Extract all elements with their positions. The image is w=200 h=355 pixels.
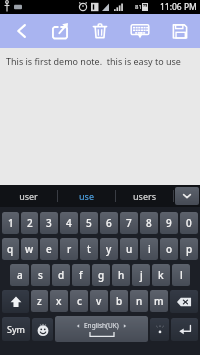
button[interactable]: o [160, 238, 178, 260]
staticText: c [77, 294, 82, 308]
button[interactable]: e [40, 238, 58, 260]
staticText: h [118, 268, 125, 282]
button[interactable]: user [0, 185, 57, 207]
button[interactable]: Space, English (UK) [55, 316, 148, 342]
button[interactable]: a [10, 264, 29, 286]
staticText: 7 [126, 216, 132, 230]
staticText: 11:06 PM [160, 1, 197, 13]
button[interactable]: d [52, 264, 70, 286]
button[interactable]: 2 [21, 212, 38, 234]
button[interactable]: Emoji [32, 318, 53, 341]
staticText: use [79, 190, 94, 202]
staticText: y [106, 242, 112, 256]
button[interactable]: Backspace [170, 290, 198, 313]
button[interactable]: Share [40, 14, 80, 48]
button[interactable]: y [100, 238, 118, 260]
button[interactable]: i [140, 238, 158, 260]
button[interactable]: p [180, 238, 198, 260]
staticText: 1 [8, 216, 14, 230]
button[interactable]: h [112, 264, 130, 286]
staticText: r [67, 242, 72, 256]
staticText: p [186, 242, 193, 256]
button[interactable]: j [132, 264, 150, 286]
staticText: z [37, 294, 42, 308]
button[interactable]: use [58, 185, 115, 207]
button[interactable]: s [31, 264, 50, 286]
staticText: m [154, 294, 164, 308]
staticText: 2 [27, 216, 33, 230]
button[interactable]: k [152, 264, 170, 286]
staticText: g [98, 268, 105, 282]
button[interactable]: c [70, 290, 88, 312]
button[interactable]: v [90, 290, 108, 312]
button[interactable]: z [31, 290, 48, 312]
staticText: i [148, 242, 151, 256]
staticText: 9 [166, 216, 172, 230]
staticText: n [136, 294, 143, 308]
staticText: d [58, 268, 65, 282]
staticText: 6 [106, 216, 112, 230]
button[interactable]: f [72, 264, 90, 286]
staticText: This is first demo note. this is easy to… [6, 55, 181, 67]
button[interactable]: 9 [160, 212, 178, 234]
staticText: s [38, 268, 43, 282]
staticText: j [140, 268, 143, 282]
staticText: k [158, 268, 164, 282]
staticText: v [96, 294, 102, 308]
button[interactable]: 8 [140, 212, 158, 234]
button[interactable]: w [21, 238, 38, 260]
button[interactable]: 6 [100, 212, 118, 234]
staticText: l [180, 268, 183, 282]
staticText: 4 [66, 216, 72, 230]
button[interactable]: users [116, 185, 173, 207]
button[interactable]: x [50, 290, 68, 312]
staticText: e [46, 242, 52, 256]
button[interactable]: q [2, 238, 19, 260]
staticText: user [19, 190, 38, 202]
staticText: English(UK) [84, 321, 119, 330]
button[interactable]: u [120, 238, 138, 260]
button[interactable]: 1 [2, 212, 19, 234]
staticText: 5 [86, 216, 92, 230]
staticText: w [25, 242, 34, 256]
button[interactable]: Keyboard [120, 14, 160, 48]
button[interactable]: Shift [2, 290, 29, 313]
staticText: t [87, 242, 91, 256]
button[interactable]: Back [0, 14, 40, 48]
staticText: Sym [7, 323, 25, 335]
staticText: b [116, 294, 123, 308]
button[interactable]: Enter [171, 318, 198, 341]
button[interactable]: 3 [40, 212, 58, 234]
button[interactable]: Expand suggestions [175, 187, 199, 205]
button[interactable]: Delete [80, 14, 120, 48]
staticText: 3 [46, 216, 52, 230]
button[interactable]: t [80, 238, 98, 260]
staticText: o [166, 242, 173, 256]
staticText: x [56, 294, 62, 308]
button[interactable]: 0 [180, 212, 198, 234]
button[interactable]: 7 [120, 212, 138, 234]
staticText: 0 [186, 216, 192, 230]
staticText: a [17, 268, 23, 282]
staticText: f [79, 268, 83, 282]
staticText: u [126, 242, 133, 256]
staticText: q [7, 242, 14, 256]
staticText: users [133, 190, 156, 202]
button[interactable]: 5 [80, 212, 98, 234]
button[interactable]: 4 [60, 212, 78, 234]
staticText: 81% [135, 3, 147, 11]
button[interactable]: b [110, 290, 128, 312]
button[interactable]: Period [150, 318, 169, 341]
button[interactable]: g [92, 264, 110, 286]
staticText: 8 [146, 216, 152, 230]
button[interactable]: Save [160, 14, 200, 48]
button[interactable]: r [60, 238, 78, 260]
button[interactable]: n [130, 290, 148, 312]
button[interactable]: m [150, 290, 168, 312]
button[interactable]: This is first demo note. this is easy to… [0, 48, 200, 185]
button[interactable]: l [172, 264, 190, 286]
button[interactable]: Sym [2, 317, 30, 341]
